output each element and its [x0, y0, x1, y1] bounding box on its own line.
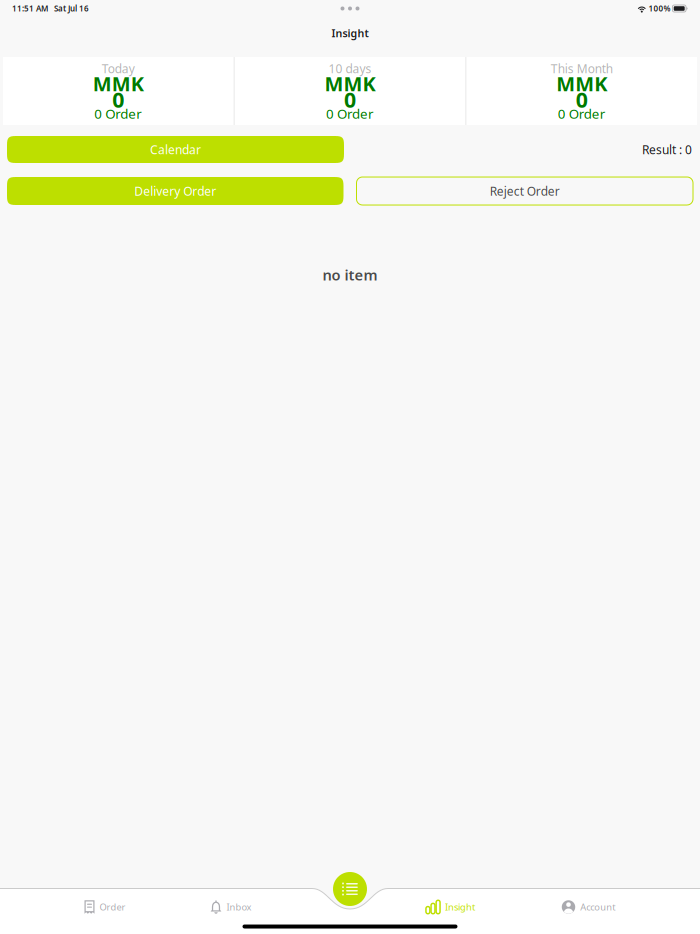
staticText: MMK: [556, 70, 607, 97]
button[interactable]: Multitasking options: [320, 2, 380, 15]
staticText: MMK: [93, 70, 144, 97]
staticText: 0 Order: [94, 105, 142, 122]
staticText: Reject Order: [490, 183, 560, 199]
staticText: 11:51 AM: [12, 3, 48, 14]
staticText: Account: [580, 901, 615, 913]
button[interactable]: Account: [481, 884, 696, 930]
staticText: Delivery Order: [134, 183, 216, 199]
staticText: Sat Jul 16: [48, 3, 89, 14]
staticText: 0: [344, 85, 356, 114]
staticText: MMK: [324, 70, 375, 97]
button[interactable]: Calendar: [7, 136, 344, 163]
staticText: no item: [322, 265, 377, 284]
staticText: Calendar: [150, 141, 201, 157]
staticText: 0: [112, 85, 124, 114]
staticText: Inbox: [227, 901, 252, 913]
button[interactable]: Insight: [416, 884, 485, 930]
staticText: 0 Order: [558, 105, 606, 122]
button[interactable]: Reject Order: [356, 177, 693, 205]
staticText: 0: [576, 85, 588, 114]
button[interactable]: Inbox: [210, 884, 252, 930]
button[interactable]: Order: [0, 884, 210, 930]
staticText: This Month: [551, 60, 613, 76]
button[interactable]: New order: [333, 872, 367, 906]
staticText: 100%: [646, 3, 672, 14]
staticText: Today: [102, 60, 135, 76]
staticText: Order: [99, 901, 125, 913]
button[interactable]: Delivery Order: [7, 177, 343, 205]
staticText: Insight: [331, 26, 368, 40]
staticText: Insight: [445, 901, 475, 913]
staticText: 0 Order: [326, 105, 374, 122]
staticText: 10 days: [328, 60, 371, 76]
staticText: Result : 0: [642, 141, 692, 157]
